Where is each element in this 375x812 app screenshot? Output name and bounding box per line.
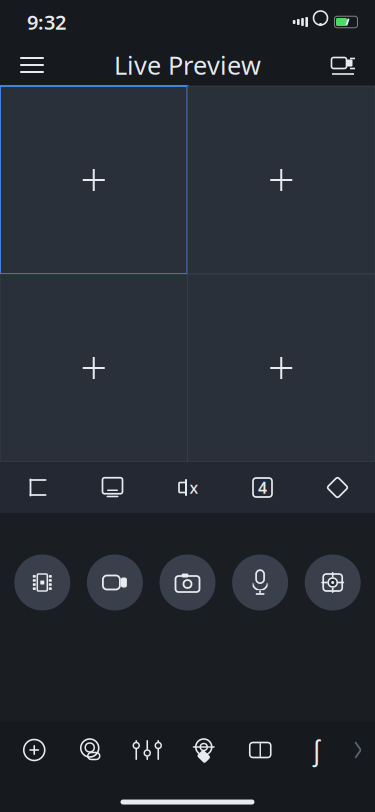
button[interactable]: Take snapshot xyxy=(151,554,224,610)
button[interactable]: Wiper xyxy=(232,723,288,777)
button[interactable]: Empty camera slot xyxy=(187,274,375,462)
staticText: ʃ xyxy=(313,732,320,768)
button[interactable]: Pan and tilt xyxy=(6,723,62,777)
button[interactable]: Menu xyxy=(8,43,56,87)
staticText: 9:32 xyxy=(27,9,66,35)
button[interactable]: Empty camera slot xyxy=(187,86,375,274)
button[interactable]: Mute audio xyxy=(150,462,225,512)
button[interactable]: Digital zoom xyxy=(296,554,369,610)
button[interactable]: Focus xyxy=(288,723,345,777)
staticText: 4 xyxy=(258,477,267,498)
button[interactable]: Empty camera slot xyxy=(0,274,187,462)
staticText: x xyxy=(189,477,198,498)
button[interactable]: More controls xyxy=(345,723,371,777)
staticText: Live Preview xyxy=(114,48,261,82)
button[interactable]: Layout, 4 channels xyxy=(225,462,300,512)
button[interactable]: Talk xyxy=(224,554,296,610)
button[interactable]: Play xyxy=(0,462,75,512)
button[interactable]: Zoom xyxy=(62,723,119,777)
button[interactable]: Snapshot xyxy=(75,462,150,512)
button[interactable]: Selected camera slot xyxy=(0,86,187,274)
button[interactable]: Camera layout xyxy=(319,43,367,87)
button[interactable]: Image settings xyxy=(119,723,175,777)
button[interactable]: Presets xyxy=(175,723,232,777)
button[interactable]: Playback xyxy=(6,554,79,610)
button[interactable]: Favorite xyxy=(300,462,375,512)
button[interactable]: Record video xyxy=(79,554,151,610)
